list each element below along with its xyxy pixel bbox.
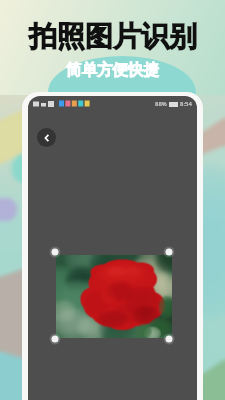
button[interactable]: Back (37, 128, 56, 147)
staticText: 拍照图片识别 (29, 19, 197, 54)
image: Selected photo (56, 255, 172, 338)
staticText: 88% (155, 100, 167, 108)
staticText: 简单方便快捷 (66, 60, 159, 80)
staticText: 8:54 (180, 100, 192, 108)
